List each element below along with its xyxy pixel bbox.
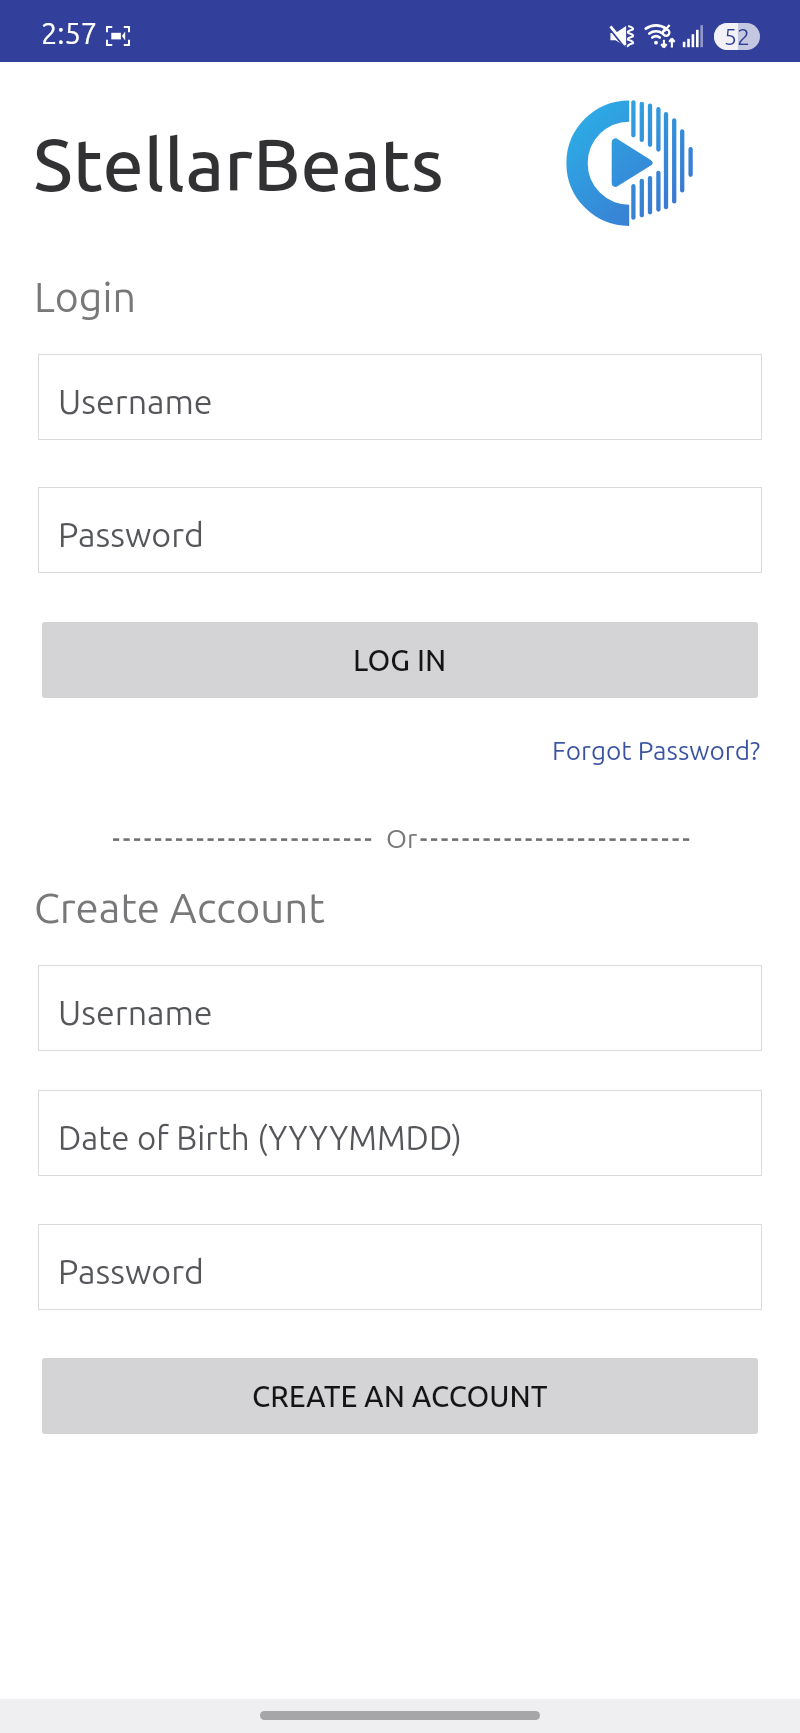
other: Mobile signal [682,24,704,48]
staticText: Username [58,382,213,420]
button[interactable]: Username [38,354,762,440]
button[interactable]: Password [38,487,762,573]
button[interactable]: Username [38,965,762,1051]
staticText: Password [58,1252,204,1290]
staticText: Login [34,274,136,320]
staticText: Username [58,993,213,1031]
staticText: Forgot Password? [552,736,761,765]
staticText: 2:57 [41,17,98,50]
staticText: StellarBeats [33,122,444,204]
staticText: Create Account [34,884,325,931]
staticText: 52 [724,24,750,50]
button[interactable]: Date of Birth (YYYYMMDD) [38,1090,762,1176]
staticText: LOG IN [353,644,447,677]
button[interactable]: CREATE AN ACCOUNT [42,1358,758,1434]
staticText: Date of Birth (YYYYMMDD) [58,1119,462,1156]
staticText: Password [58,515,204,553]
other: Sound off, vibrate [610,26,633,47]
button[interactable]: Home [260,1711,540,1720]
button[interactable]: LOG IN [42,622,758,698]
other: Screen recorder [106,26,130,46]
staticText: CREATE AN ACCOUNT [252,1380,548,1413]
button[interactable]: Forgot Password? [546,731,767,770]
other: Wi-Fi [643,22,677,49]
staticText: Or [386,823,418,853]
button[interactable]: Password [38,1224,762,1310]
